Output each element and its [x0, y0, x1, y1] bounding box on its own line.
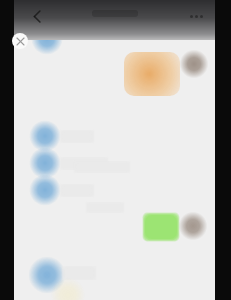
button[interactable] [34, 178, 92, 202]
button[interactable]: More options [184, 5, 208, 27]
button[interactable]: Back [24, 3, 50, 29]
button[interactable] [124, 52, 180, 96]
button[interactable] [34, 124, 92, 148]
button[interactable]: Close [12, 33, 28, 49]
button[interactable] [34, 151, 106, 175]
